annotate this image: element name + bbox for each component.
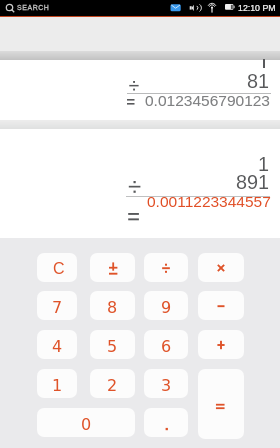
button[interactable]: SEARCH — [0, 0, 280, 16]
button[interactable]: 1 — [37, 369, 77, 398]
button[interactable]: 9 — [144, 291, 188, 320]
button[interactable] — [90, 253, 135, 282]
staticText: 0.0123456790123 — [145, 92, 270, 109]
button[interactable] — [198, 330, 244, 359]
button[interactable] — [198, 369, 244, 439]
button[interactable] — [144, 408, 188, 437]
button[interactable]: 4 — [37, 330, 77, 359]
staticText: 81 — [247, 70, 270, 92]
staticText: 7 — [52, 298, 63, 317]
staticText: 9 — [161, 298, 172, 317]
staticText: 6 — [161, 337, 172, 356]
staticText: 891 — [236, 171, 270, 193]
button[interactable]: 8 — [90, 291, 135, 320]
staticText: 1 — [258, 153, 270, 175]
staticText: 0 — [81, 415, 92, 434]
button[interactable]: 2 — [90, 369, 135, 398]
staticText: 12:10 PM — [238, 3, 276, 13]
staticText: C — [53, 260, 65, 278]
staticText: 5 — [107, 337, 118, 356]
button[interactable]: 5 — [90, 330, 135, 359]
button[interactable]: 0 — [37, 408, 135, 437]
staticText: 0.0011223344557 — [147, 193, 271, 210]
staticText: 8 — [107, 298, 118, 317]
staticText: 1 — [52, 376, 63, 395]
staticText: 2 — [107, 376, 118, 395]
button[interactable] — [144, 253, 188, 282]
button[interactable]: 7 — [37, 291, 77, 320]
button[interactable]: 3 — [144, 369, 188, 398]
staticText: SEARCH — [17, 4, 50, 12]
button[interactable] — [198, 253, 244, 282]
staticText: 3 — [161, 376, 172, 395]
button[interactable] — [198, 291, 244, 320]
button[interactable]: 6 — [144, 330, 188, 359]
button[interactable]: C — [37, 253, 77, 282]
staticText: 4 — [52, 337, 63, 356]
